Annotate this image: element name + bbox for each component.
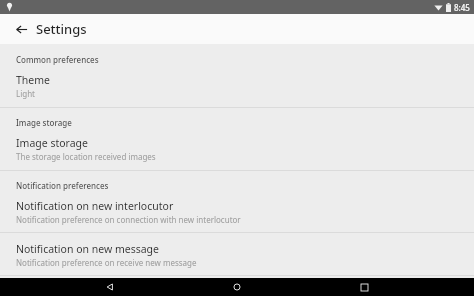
button[interactable]: Notification on new interlocutor <box>0 195 474 226</box>
staticText: Settings <box>36 20 87 38</box>
staticText: Common preferences <box>16 54 99 65</box>
button[interactable]: Image storage <box>0 132 474 163</box>
staticText: Notification preference on connection wi… <box>16 214 241 225</box>
button[interactable]: Recent apps <box>347 278 381 296</box>
staticText: Light <box>16 88 36 99</box>
button[interactable]: Notification on new message <box>0 233 474 269</box>
staticText: Notification preferences <box>16 180 109 191</box>
staticText: The storage location received images <box>16 151 156 162</box>
staticText: 8:45 <box>454 2 470 13</box>
staticText: Image storage <box>16 117 72 128</box>
staticText: Notification on new interlocutor <box>16 199 174 213</box>
button[interactable]: Home <box>220 278 254 296</box>
staticText: Image storage <box>16 136 88 150</box>
button[interactable]: Theme <box>0 69 474 100</box>
staticText: Notification preference on receive new m… <box>16 257 197 268</box>
staticText: Notification on new message <box>16 242 159 256</box>
button[interactable]: Back <box>93 278 127 296</box>
staticText: Theme <box>16 73 50 87</box>
button[interactable]: Navigate up <box>8 16 34 42</box>
